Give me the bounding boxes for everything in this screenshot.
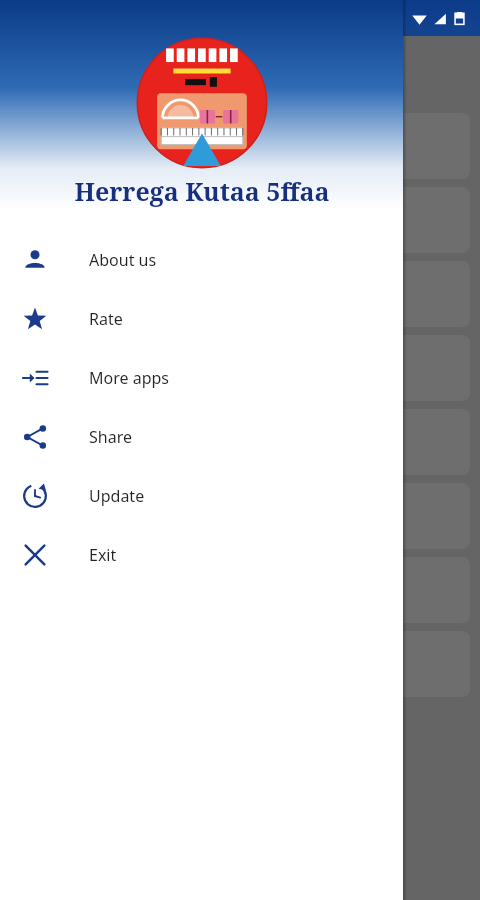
button[interactable]: Update [0, 466, 403, 525]
button[interactable]: Rate [0, 289, 403, 348]
button[interactable] [10, 483, 470, 549]
button[interactable] [10, 335, 470, 401]
button[interactable]: About us [0, 230, 403, 289]
staticText: Share [89, 426, 132, 448]
staticText: Exit [89, 544, 117, 566]
button[interactable] [10, 187, 470, 253]
staticText: Rate [89, 308, 123, 330]
staticText: More apps [89, 367, 169, 389]
button[interactable]: More apps [0, 348, 403, 407]
staticText: Herrega Kutaa 5ffaa [74, 174, 330, 208]
staticText: 9:38 [18, 8, 48, 28]
button[interactable] [10, 113, 470, 179]
button[interactable]: …isa… [10, 631, 470, 697]
staticText: Update [89, 485, 145, 507]
button[interactable]: Exit [0, 525, 403, 584]
staticText: About us [89, 249, 157, 271]
button[interactable]: Share [0, 407, 403, 466]
button[interactable] [10, 409, 470, 475]
button[interactable] [10, 261, 470, 327]
button[interactable]: …bo… [10, 557, 470, 623]
